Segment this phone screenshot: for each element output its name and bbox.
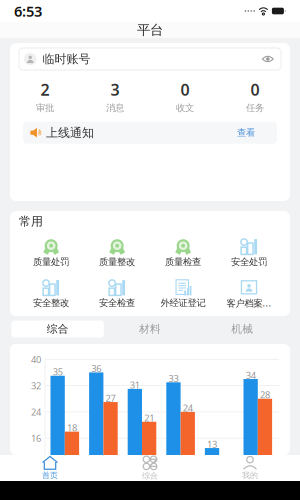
button[interactable]: 3	[80, 79, 150, 114]
staticText: 27	[105, 392, 115, 404]
staticText: 33	[168, 372, 178, 384]
staticText: 我的	[242, 470, 258, 480]
staticText: 综合	[142, 471, 158, 481]
staticText: 35	[53, 365, 63, 378]
button[interactable]: 安全整改	[18, 279, 84, 307]
button[interactable]: 材料	[104, 320, 196, 337]
staticText: 24	[183, 402, 193, 414]
staticText: 0	[250, 79, 259, 100]
staticText: 临时账号	[42, 52, 90, 66]
staticText: 客户档案...	[226, 297, 271, 309]
staticText: 任务	[246, 102, 264, 114]
button[interactable]: 上线通知	[23, 122, 277, 144]
button[interactable]: 0	[220, 79, 290, 114]
staticText: 综合	[47, 322, 69, 335]
staticText: 机械	[231, 322, 253, 335]
staticText: 34	[246, 369, 256, 381]
button[interactable]: 安全处罚	[216, 238, 282, 266]
button[interactable]: 我的	[200, 455, 300, 481]
staticText: 外经证登记	[160, 297, 205, 309]
staticText: 材料	[139, 322, 161, 335]
staticText: 16	[31, 432, 41, 444]
staticText: 质量处罚	[33, 256, 69, 268]
staticText: 13	[207, 438, 217, 450]
staticText: 28	[260, 389, 270, 401]
button[interactable]: 综合	[11, 320, 104, 337]
button[interactable]: 首页	[0, 455, 100, 481]
staticText: 24	[31, 406, 41, 418]
button[interactable]: 外经证登记	[150, 279, 216, 307]
button[interactable]: 综合	[100, 455, 200, 481]
button[interactable]: 2	[10, 79, 80, 114]
staticText: 2	[40, 79, 49, 100]
staticText: 安全处罚	[231, 256, 267, 268]
staticText: 32	[31, 379, 41, 392]
button[interactable]: 临时账号	[19, 48, 281, 70]
staticText: 质量检查	[165, 256, 201, 268]
button[interactable]: 0	[150, 79, 220, 114]
staticText: 40	[31, 353, 41, 365]
button[interactable]: 质量处罚	[18, 238, 84, 266]
staticText: 常用	[19, 214, 43, 229]
staticText: 18	[67, 421, 77, 434]
staticText: 查看	[237, 127, 255, 138]
button[interactable]: 机械	[196, 320, 288, 337]
staticText: 36	[91, 362, 101, 375]
staticText: 上线通知	[46, 125, 94, 140]
staticText: 0	[180, 79, 189, 100]
staticText: 审批	[36, 102, 54, 114]
staticText: 质量整改	[99, 256, 135, 268]
staticText: 收文	[176, 102, 194, 114]
button[interactable]: 质量检查	[150, 238, 216, 266]
staticText: 平台	[137, 22, 163, 38]
button[interactable]: 客户档案...	[216, 279, 282, 307]
staticText: 安全整改	[33, 297, 69, 309]
staticText: 首页	[42, 470, 58, 480]
button[interactable]: 质量整改	[84, 238, 150, 266]
staticText: 安全检查	[99, 297, 135, 309]
staticText: 6:53	[14, 1, 42, 21]
staticText: 3	[110, 79, 119, 100]
staticText: 消息	[106, 102, 124, 114]
staticText: 31	[130, 379, 140, 391]
staticText: 21	[144, 412, 154, 424]
button[interactable]: 安全检查	[84, 279, 150, 307]
